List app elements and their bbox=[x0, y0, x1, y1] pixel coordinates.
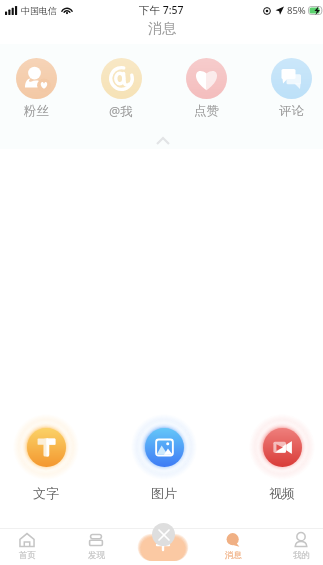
staticText: 首页 bbox=[19, 550, 36, 561]
button[interactable]: @我 bbox=[91, 58, 151, 120]
button[interactable]: 图片 bbox=[132, 415, 196, 495]
staticText: 发现 bbox=[88, 550, 105, 561]
staticText: 消息 bbox=[148, 20, 176, 38]
button[interactable]: 视频 bbox=[250, 415, 314, 495]
button[interactable]: 文字 bbox=[14, 415, 78, 495]
button[interactable]: 评论 bbox=[261, 58, 321, 119]
button[interactable]: 粉丝 bbox=[6, 58, 66, 119]
button[interactable]: 消息 bbox=[206, 532, 260, 561]
staticText: 我的 bbox=[293, 550, 310, 561]
staticText: 粉丝 bbox=[24, 103, 49, 119]
button[interactable]: 发现 bbox=[69, 532, 123, 561]
staticText: 评论 bbox=[279, 103, 304, 119]
staticText: 图片 bbox=[151, 485, 177, 501]
staticText: 点赞 bbox=[194, 103, 219, 119]
button[interactable]: Close bbox=[139, 521, 187, 558]
staticText: 文字 bbox=[33, 485, 59, 501]
button[interactable]: 点赞 bbox=[176, 58, 236, 119]
staticText: 中国电信 bbox=[21, 5, 57, 16]
button[interactable]: 我的 bbox=[274, 532, 323, 561]
button[interactable]: 首页 bbox=[0, 532, 54, 561]
staticText: 消息 bbox=[225, 550, 242, 561]
staticText: 85% bbox=[287, 4, 306, 17]
staticText: 下午 7:57 bbox=[139, 3, 184, 17]
staticText: @我 bbox=[109, 103, 133, 120]
staticText: 视频 bbox=[269, 485, 295, 501]
